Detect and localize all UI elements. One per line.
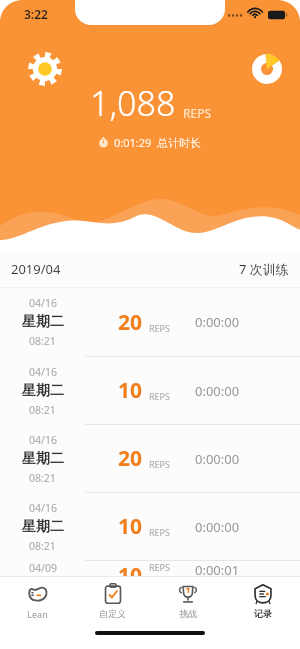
staticText: 08:21 bbox=[29, 539, 56, 553]
staticText: Lean bbox=[27, 608, 48, 620]
staticText: 挑战 bbox=[179, 608, 197, 619]
staticText: 0:00:01 bbox=[195, 561, 240, 576]
staticText: 0:01:29 总计时长 bbox=[114, 135, 202, 150]
staticText: 0:00:00 bbox=[195, 313, 240, 331]
staticText: 04/16 bbox=[29, 501, 57, 515]
staticText: REPS bbox=[149, 561, 170, 573]
staticText: 星期二 bbox=[22, 382, 64, 400]
button[interactable]: 04/16 bbox=[0, 288, 300, 356]
button[interactable]: 自定义 bbox=[75, 577, 150, 625]
staticText: 星期二 bbox=[22, 313, 64, 331]
button[interactable]: 记录 bbox=[225, 577, 300, 625]
staticText: 20 bbox=[118, 444, 143, 473]
staticText: 04/16 bbox=[29, 296, 57, 310]
staticText: 2019/04 bbox=[11, 260, 61, 278]
staticText: 星期二 bbox=[22, 518, 64, 536]
staticText: 10 bbox=[118, 561, 143, 576]
staticText: 10 bbox=[118, 376, 143, 405]
staticText: 7 次训练 bbox=[239, 260, 289, 278]
staticText: 20 bbox=[118, 308, 143, 337]
staticText: 自定义 bbox=[99, 608, 126, 619]
staticText: 记录 bbox=[254, 608, 272, 619]
staticText: 04/16 bbox=[29, 365, 57, 379]
staticText: REPS bbox=[183, 105, 211, 121]
staticText: 08:21 bbox=[29, 334, 56, 348]
staticText: 3:22 bbox=[24, 6, 48, 22]
button[interactable]: 04/16 bbox=[0, 492, 300, 560]
staticText: REPS bbox=[149, 458, 170, 470]
button[interactable]: 04/16 bbox=[0, 356, 300, 424]
button[interactable]: Lean bbox=[0, 577, 75, 625]
button[interactable]: Settings bbox=[28, 52, 62, 86]
staticText: REPS bbox=[149, 526, 170, 538]
staticText: 08:21 bbox=[29, 403, 56, 417]
staticText: 1,088 bbox=[90, 80, 176, 126]
staticText: 0:00:00 bbox=[195, 518, 240, 536]
staticText: 08:21 bbox=[29, 471, 56, 485]
button[interactable]: 04/09 bbox=[0, 560, 300, 576]
staticText: 10 bbox=[118, 512, 143, 541]
button[interactable]: 04/16 bbox=[0, 424, 300, 492]
staticText: 0:00:00 bbox=[195, 382, 240, 400]
button[interactable]: Progress bbox=[252, 54, 282, 84]
staticText: REPS bbox=[149, 322, 170, 334]
staticText: REPS bbox=[149, 390, 170, 402]
staticText: 04/09 bbox=[29, 561, 57, 575]
staticText: 0:00:00 bbox=[195, 450, 240, 468]
button[interactable]: 挑战 bbox=[150, 577, 225, 625]
staticText: 星期二 bbox=[22, 450, 64, 468]
staticText: 04/16 bbox=[29, 433, 57, 447]
